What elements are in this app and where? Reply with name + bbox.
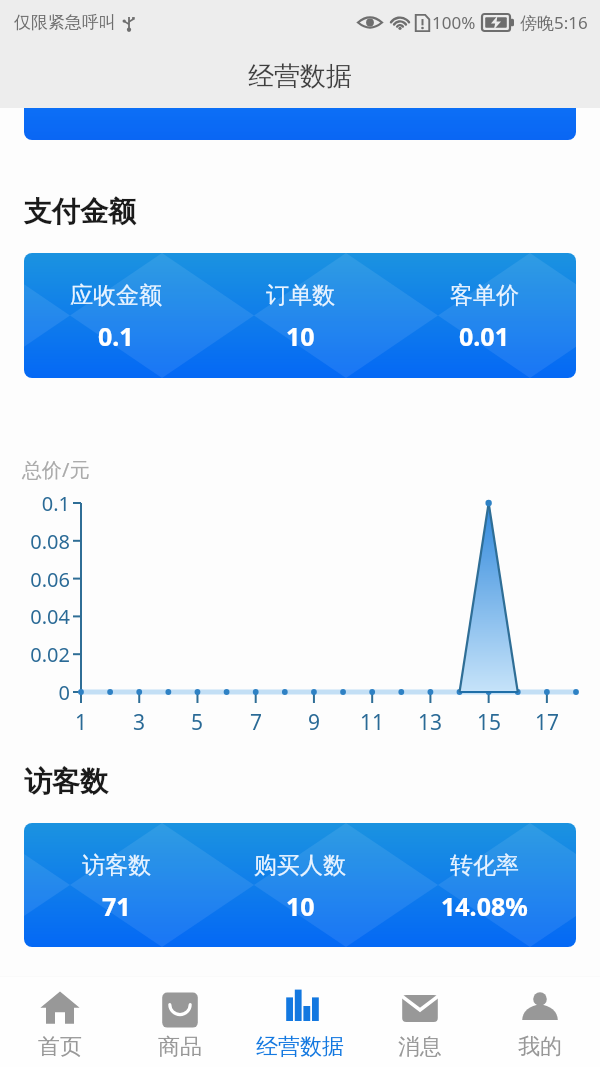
staticText: 0.08 — [0, 528, 70, 555]
staticText: 0.01 — [459, 319, 509, 353]
staticText: 0.04 — [0, 603, 70, 630]
staticText: 商品 — [158, 1033, 202, 1061]
other: 商品 — [160, 986, 200, 1026]
other: 我的 — [520, 986, 560, 1026]
button[interactable]: 经营数据 — [240, 977, 360, 1067]
staticText: 0 — [0, 679, 70, 706]
staticText: 访客数 — [82, 851, 151, 880]
staticText: 1 — [61, 708, 101, 737]
button[interactable]: 消息 — [360, 977, 480, 1067]
staticText: 71 — [102, 889, 131, 923]
button[interactable] — [24, 108, 576, 140]
button[interactable]: 应收金额 — [24, 253, 576, 378]
other: 消息 — [400, 986, 440, 1026]
staticText: 总价/元 — [22, 456, 90, 483]
staticText: 14.08% — [441, 889, 528, 923]
staticText: 访客数 — [24, 764, 108, 799]
staticText: 我的 — [518, 1033, 562, 1061]
staticText: 5 — [177, 708, 217, 737]
staticText: 应收金额 — [70, 281, 162, 310]
button[interactable]: 首页 — [0, 977, 120, 1067]
staticText: 15 — [469, 708, 509, 737]
staticText: 经营数据 — [248, 60, 352, 93]
staticText: 仅限紧急呼叫 — [14, 12, 116, 33]
staticText: 购买人数 — [254, 851, 346, 880]
button[interactable]: 访客数 — [24, 823, 576, 947]
other: 首页 — [40, 986, 80, 1026]
staticText: 0.02 — [0, 641, 70, 668]
staticText: 3 — [119, 708, 159, 737]
staticText: 经营数据 — [256, 1033, 344, 1061]
staticText: 7 — [236, 708, 276, 737]
button[interactable]: 我的 — [480, 977, 600, 1067]
staticText: 17 — [527, 708, 567, 737]
staticText: 0.1 — [98, 319, 134, 353]
staticText: 支付金额 — [24, 194, 136, 229]
staticText: 100% — [432, 11, 476, 34]
staticText: 傍晚5:16 — [520, 11, 588, 34]
staticText: 首页 — [38, 1033, 82, 1061]
other: 经营数据 — [280, 986, 320, 1026]
staticText: 0.1 — [0, 490, 70, 517]
button[interactable]: 商品 — [120, 977, 240, 1067]
staticText: 13 — [410, 708, 450, 737]
staticText: 0.06 — [0, 566, 70, 593]
staticText: 消息 — [398, 1033, 442, 1061]
staticText: 客单价 — [450, 281, 519, 310]
staticText: 转化率 — [450, 851, 519, 880]
staticText: 11 — [352, 708, 392, 737]
staticText: 订单数 — [266, 281, 335, 310]
staticText: 10 — [286, 889, 315, 923]
staticText: 10 — [286, 319, 315, 353]
staticText: 9 — [294, 708, 334, 737]
